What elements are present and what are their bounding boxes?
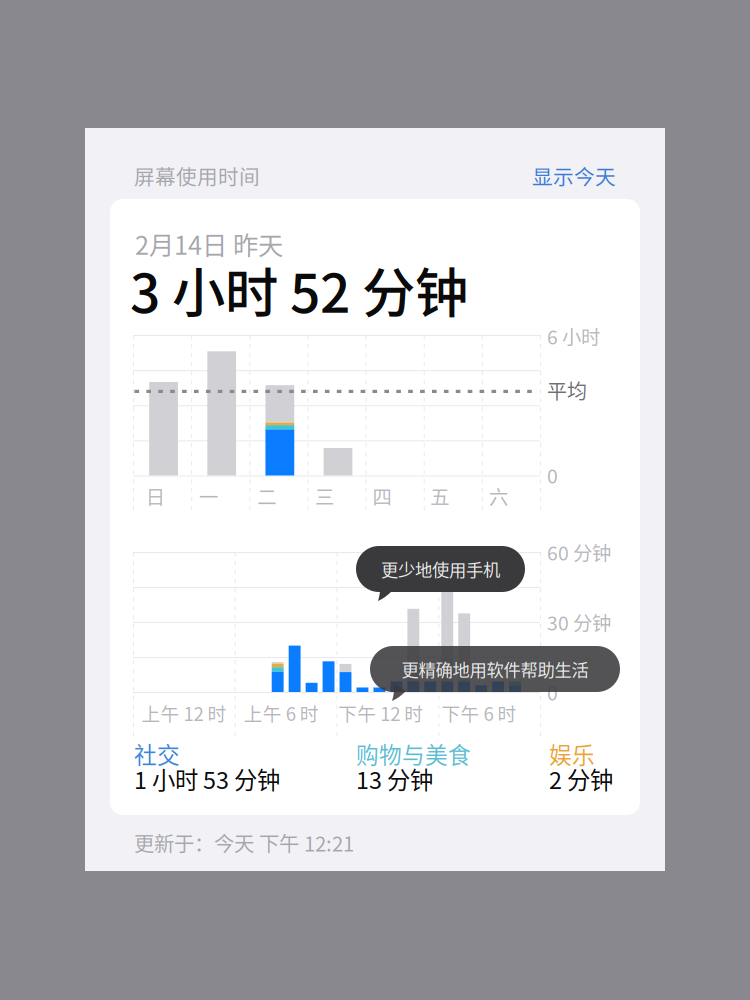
staticText: 0	[547, 461, 558, 489]
staticText: 五	[430, 482, 449, 510]
staticText: 更少地使用手机	[381, 556, 500, 582]
staticText: 13 分钟	[356, 762, 433, 796]
staticText: 2 分钟	[549, 762, 613, 796]
staticText: 0	[547, 678, 558, 706]
staticText: 2月14日 昨天	[135, 225, 283, 262]
staticText: 更精确地用软件帮助生活	[401, 656, 588, 682]
staticText: 四	[373, 482, 392, 510]
staticText: 屏幕使用时间	[134, 161, 260, 191]
staticText: 30 分钟	[547, 608, 611, 636]
staticText: 社交	[134, 737, 180, 770]
staticText: 三	[315, 482, 334, 510]
staticText: 6 小时	[547, 322, 600, 350]
staticText: 上午 6 时	[244, 699, 319, 726]
staticText: 3 小时 52 分钟	[130, 251, 468, 328]
staticText: 日	[146, 482, 165, 510]
staticText: 一	[199, 482, 218, 510]
staticText: 购物与美食	[356, 737, 471, 770]
staticText: 更新于：今天 下午 12:21	[134, 828, 354, 857]
staticText: 上午 12 时	[142, 699, 227, 726]
staticText: 1 小时 53 分钟	[134, 762, 280, 796]
staticText: 显示今天	[532, 161, 616, 191]
staticText: 平均	[547, 376, 587, 405]
staticText: 六	[489, 482, 508, 510]
staticText: 下午 12 时	[338, 699, 423, 726]
staticText: 60 分钟	[547, 538, 611, 566]
staticText: 二	[257, 482, 276, 510]
staticText: 娱乐	[549, 737, 595, 770]
staticText: 下午 6 时	[441, 699, 516, 726]
